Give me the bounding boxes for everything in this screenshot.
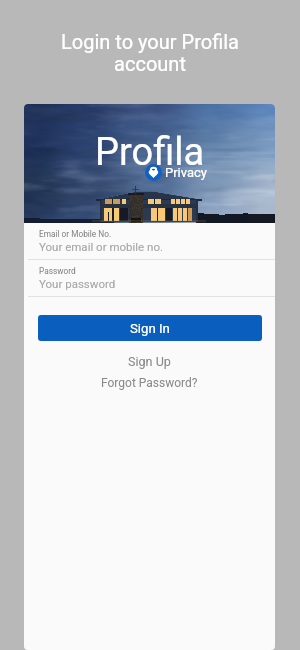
staticText: Privacy [165, 165, 207, 180]
staticText: Your email or mobile no. [39, 240, 163, 253]
staticText: Your password [39, 277, 116, 290]
button[interactable]: Sign In [38, 315, 262, 341]
staticText: Forgot Password? [101, 376, 198, 390]
button[interactable]: Sign Up [24, 350, 275, 372]
staticText: Profila [95, 130, 205, 175]
button[interactable]: Forgot Password? [24, 372, 275, 394]
staticText: Password [39, 266, 76, 276]
staticText: Email or Mobile No. [39, 229, 112, 239]
button[interactable]: Email or Mobile No. [24, 223, 275, 260]
staticText: Sign In [130, 321, 170, 336]
button[interactable]: Password [24, 260, 275, 297]
staticText: Login to your Profila account [0, 30, 300, 76]
staticText: Sign Up [128, 354, 171, 369]
